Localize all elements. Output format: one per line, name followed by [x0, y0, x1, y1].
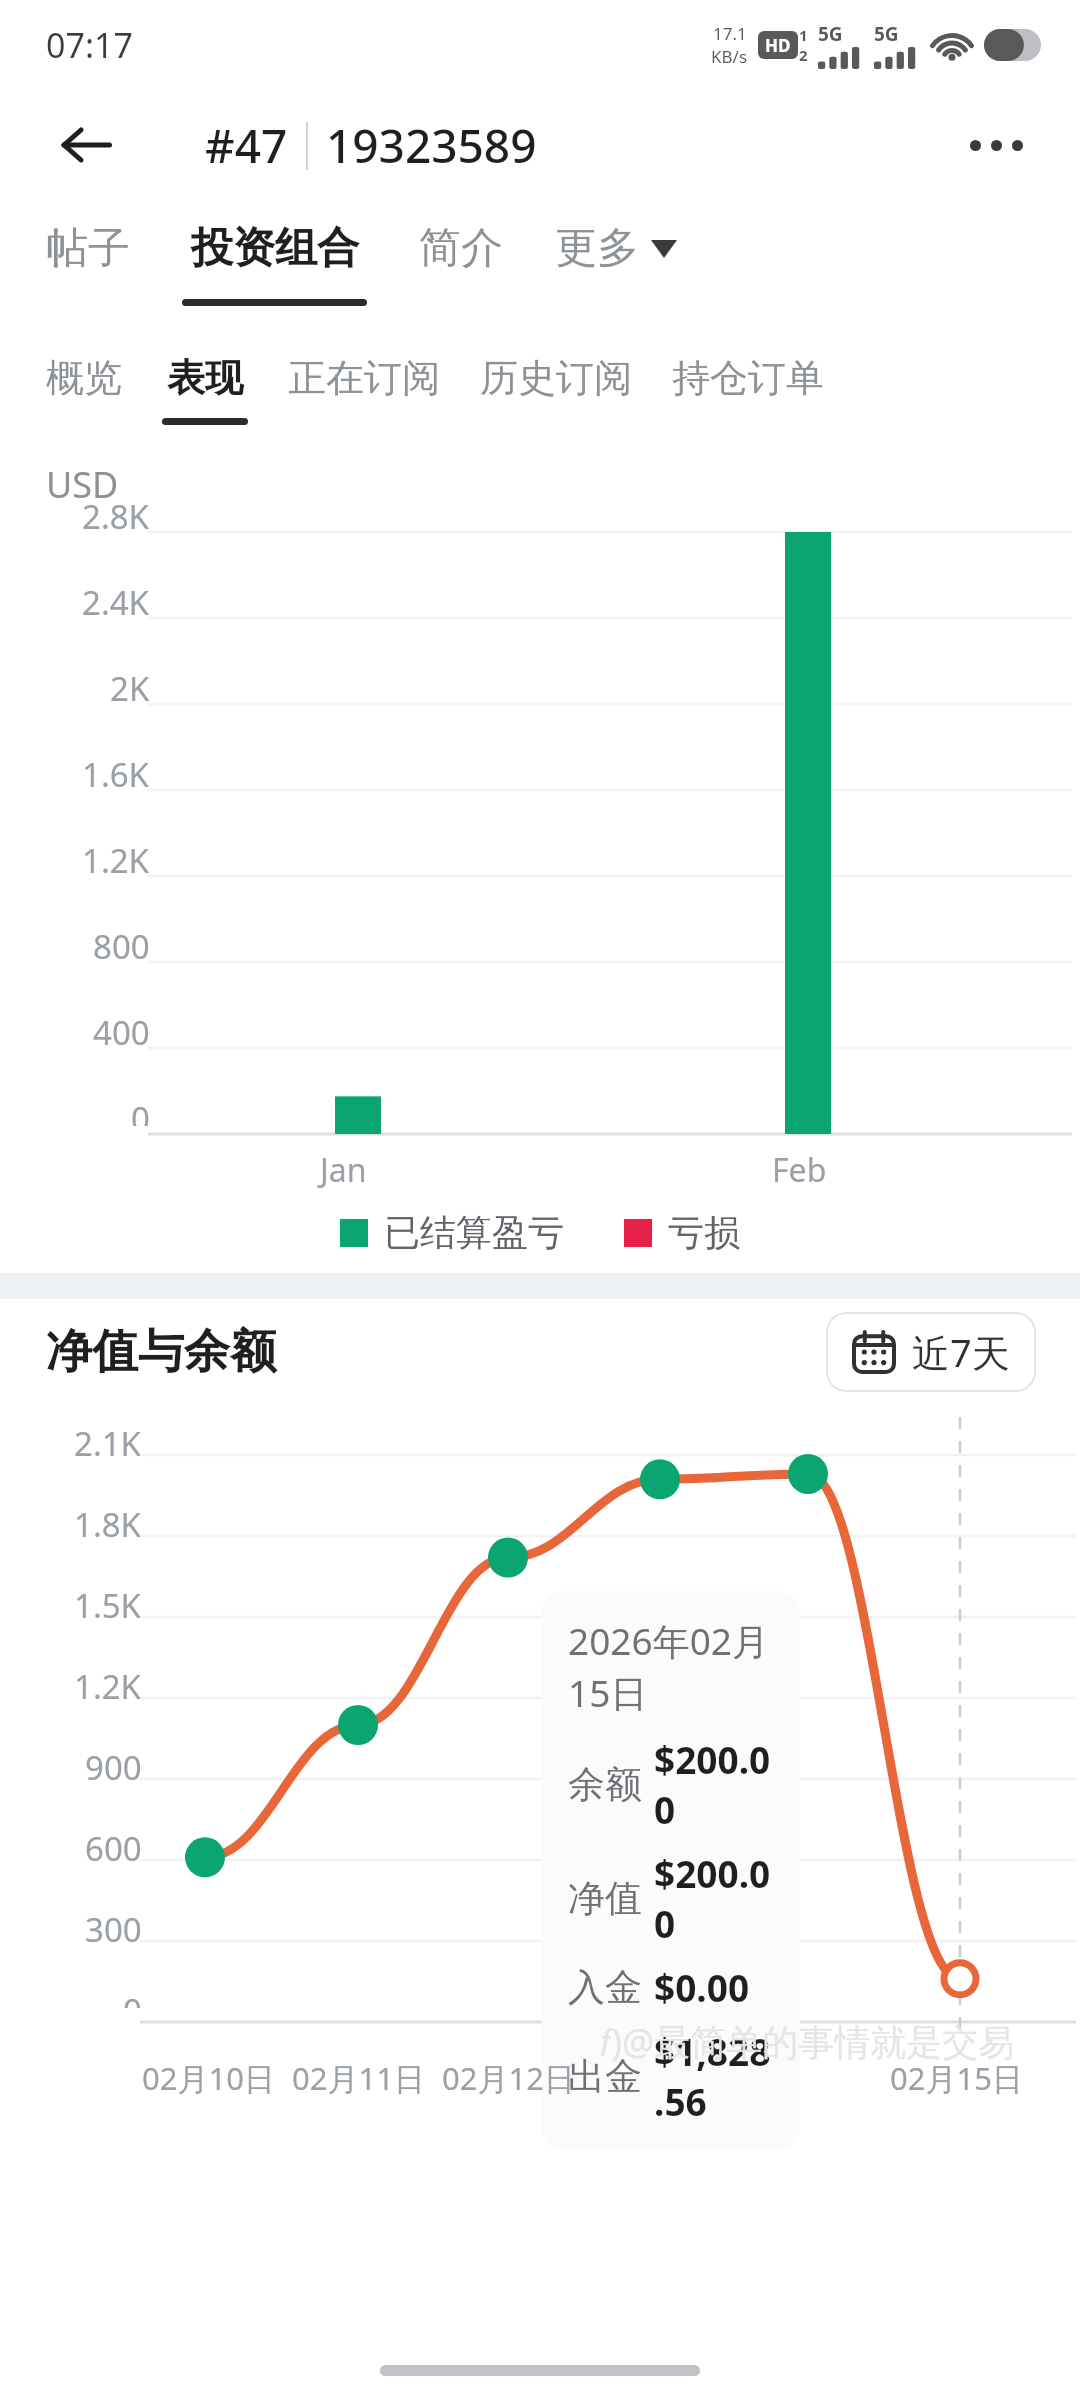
staticText: 概览 — [46, 354, 122, 402]
staticText: 余额 — [568, 1761, 642, 1808]
button[interactable]: 历史订阅 — [480, 340, 632, 418]
staticText: $1,828.56 — [654, 2026, 774, 2126]
staticText: 0 — [123, 1988, 142, 2008]
staticText: 17.1 — [713, 22, 747, 45]
staticText: 2.4K — [82, 580, 150, 625]
staticText: HD — [765, 34, 791, 57]
staticText: 1.5K — [74, 1583, 142, 1628]
staticText: 净值 — [568, 1875, 642, 1922]
staticText: 800 — [93, 924, 150, 969]
staticText: 1 — [799, 25, 808, 45]
staticText: USD — [46, 460, 119, 509]
staticText: 历史订阅 — [480, 354, 632, 402]
staticText: 300 — [85, 1907, 142, 1952]
staticText: 净值与余额 — [46, 1323, 276, 1381]
button[interactable]: 概览 — [46, 340, 122, 418]
button[interactable]: 更多 — [555, 200, 677, 275]
staticText: $200.00 — [654, 1734, 774, 1834]
staticText: 更多 — [555, 222, 639, 275]
staticText: 正在订阅 — [288, 354, 440, 402]
staticText: 900 — [85, 1745, 142, 1790]
staticText: 1.8K — [74, 1502, 142, 1547]
staticText: 简介 — [419, 222, 503, 275]
staticText: 亏损 — [668, 1210, 740, 1255]
staticText: 2.8K — [82, 494, 150, 539]
staticText: 已结算盈亏 — [384, 1210, 564, 1255]
staticText: 5G — [874, 21, 899, 47]
button[interactable]: 简介 — [419, 200, 503, 299]
staticText: 1.2K — [82, 838, 150, 883]
staticText: KB/s — [711, 45, 748, 68]
staticText: Jan — [320, 1148, 367, 1192]
staticText: 02月11日 — [292, 2057, 425, 2099]
staticText: 19323589 — [326, 114, 537, 177]
staticText: 0 — [131, 1096, 150, 1126]
button[interactable]: 持仓订单 — [672, 340, 824, 418]
staticText: 2 — [799, 45, 808, 65]
staticText: 表现 — [167, 354, 243, 402]
staticText: #47 — [205, 114, 288, 177]
staticText: 近7天 — [912, 1326, 1010, 1378]
staticText: 出金 — [568, 2053, 642, 2100]
staticText: 1.6K — [82, 752, 150, 797]
staticText: $0.00 — [654, 1962, 750, 2012]
button[interactable]: 帖子 — [46, 200, 130, 299]
staticText: 02月12日 — [442, 2057, 575, 2099]
button[interactable]: More options — [956, 105, 1036, 185]
staticText: 07:17 — [46, 22, 133, 68]
staticText: $200.00 — [654, 1848, 774, 1948]
button[interactable]: Back — [48, 107, 124, 183]
staticText: 600 — [85, 1826, 142, 1871]
staticText: 2026年02月15日 — [568, 1615, 774, 1718]
staticText: 02月10日 — [142, 2057, 275, 2099]
button[interactable]: 表现 — [162, 340, 248, 425]
staticText: 帖子 — [46, 222, 130, 275]
staticText: 𝑓)@最简单的事情就是交易 — [600, 2017, 1015, 2066]
staticText: 02月15日 — [890, 2057, 1023, 2099]
staticText: 投资组合 — [191, 222, 359, 275]
staticText: 入金 — [568, 1964, 642, 2011]
staticText: 1.2K — [74, 1664, 142, 1709]
staticText: 2.1K — [74, 1421, 142, 1466]
staticText: 持仓订单 — [672, 354, 824, 402]
staticText: 2K — [110, 666, 150, 711]
button[interactable]: 正在订阅 — [288, 340, 440, 418]
button[interactable]: 近7天 — [826, 1312, 1036, 1392]
button[interactable]: 投资组合 — [182, 200, 367, 306]
staticText: 400 — [93, 1010, 150, 1055]
staticText: Feb — [772, 1148, 827, 1192]
staticText: 5G — [818, 21, 843, 47]
